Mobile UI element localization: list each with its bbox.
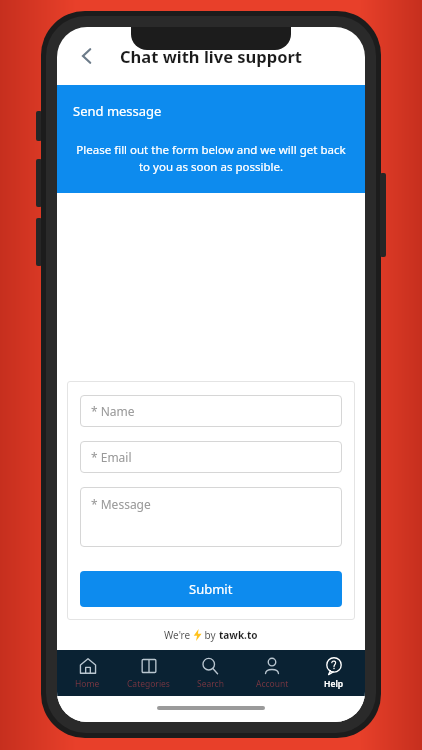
staticText: Search bbox=[197, 678, 224, 690]
staticText: Send message bbox=[73, 102, 162, 120]
button[interactable]: * Name bbox=[80, 395, 342, 427]
staticText: * Message bbox=[91, 496, 151, 512]
staticText: We're bbox=[164, 628, 193, 642]
button[interactable]: * Email bbox=[80, 441, 342, 473]
staticText: by bbox=[202, 628, 219, 642]
staticText: Please fill out the form below and we wi… bbox=[73, 142, 349, 175]
button[interactable]: * Message bbox=[80, 487, 342, 547]
button[interactable]: Account bbox=[241, 650, 303, 696]
button[interactable]: Back bbox=[67, 36, 107, 76]
staticText: Chat with live support bbox=[120, 45, 303, 67]
staticText: * Email bbox=[91, 449, 132, 465]
button[interactable]: Categories bbox=[118, 650, 179, 696]
staticText: Categories bbox=[127, 678, 170, 690]
staticText: Account bbox=[256, 678, 289, 690]
staticText: * Name bbox=[91, 403, 135, 419]
staticText: Home bbox=[75, 678, 100, 690]
staticText: Help bbox=[324, 678, 344, 690]
button[interactable]: Help bbox=[303, 650, 365, 696]
staticText: Submit bbox=[189, 580, 233, 598]
button[interactable]: Home bbox=[57, 650, 118, 696]
button[interactable]: Search bbox=[179, 650, 241, 696]
button[interactable]: Submit bbox=[80, 571, 342, 607]
staticText: tawk.to bbox=[219, 628, 258, 642]
